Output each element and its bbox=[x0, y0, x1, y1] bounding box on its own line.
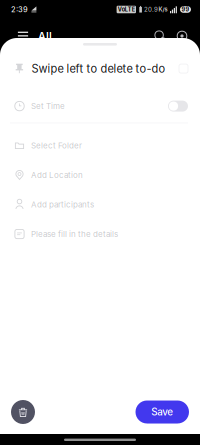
staticText: VoLTE bbox=[118, 6, 135, 13]
staticText: 2:39 bbox=[11, 5, 28, 14]
button[interactable]: Select Folder bbox=[0, 131, 200, 160]
button[interactable]: Settings bbox=[171, 25, 193, 47]
staticText: 20.9 bbox=[144, 6, 158, 13]
button[interactable]: Search bbox=[149, 25, 171, 47]
button[interactable]: Add Location bbox=[0, 160, 200, 190]
staticText: All bbox=[38, 29, 52, 42]
staticText: 99 bbox=[181, 6, 189, 13]
staticText: Please fill in the details bbox=[31, 229, 118, 239]
button[interactable]: Save bbox=[135, 400, 189, 423]
staticText: Swipe left to delete to-do bbox=[31, 62, 165, 75]
staticText: Save bbox=[151, 406, 173, 418]
button[interactable]: Set Time bbox=[0, 91, 200, 121]
staticText: Add Location bbox=[31, 170, 83, 180]
staticText: Select Folder bbox=[31, 141, 82, 150]
button[interactable]: Please fill in the details bbox=[0, 219, 200, 249]
staticText: Add participants bbox=[31, 200, 94, 209]
staticText: K/s bbox=[158, 6, 167, 13]
button[interactable]: Swipe left to delete to-do bbox=[0, 54, 200, 83]
button[interactable]: Delete bbox=[11, 400, 35, 424]
button[interactable]: Menu bbox=[13, 25, 33, 46]
staticText: Set Time bbox=[31, 101, 65, 111]
button[interactable]: Add participants bbox=[0, 190, 200, 219]
